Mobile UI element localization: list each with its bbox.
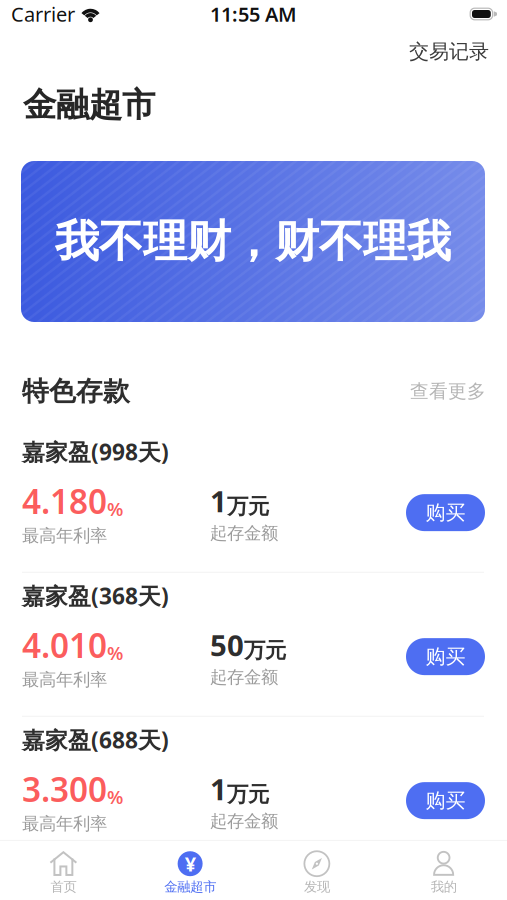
staticText: 最高年利率 bbox=[22, 813, 107, 834]
staticText: 购买 bbox=[425, 644, 465, 669]
staticText: ¥ bbox=[185, 850, 196, 877]
staticText: 起存金额 bbox=[210, 810, 278, 832]
button[interactable]: 购买 bbox=[406, 494, 485, 531]
staticText: 嘉家盈(368天) bbox=[22, 581, 169, 611]
staticText: 查看更多 bbox=[410, 380, 486, 403]
staticText: 金融超市 bbox=[164, 879, 216, 895]
staticText: Carrier bbox=[11, 1, 75, 27]
staticText: 50 bbox=[210, 625, 244, 664]
button[interactable]: 交易记录 bbox=[404, 33, 494, 70]
staticText: 最高年利率 bbox=[22, 669, 107, 690]
staticText: 1 bbox=[210, 481, 227, 520]
staticText: 嘉家盈(688天) bbox=[22, 725, 169, 755]
staticText: 万元 bbox=[227, 781, 269, 807]
staticText: 起存金额 bbox=[210, 666, 278, 688]
staticText: 金融超市 bbox=[23, 84, 155, 125]
button[interactable]: 我的 bbox=[380, 851, 507, 895]
staticText: 万元 bbox=[227, 493, 269, 519]
staticText: 万元 bbox=[244, 637, 286, 663]
staticText: 我不理财，财不理我 bbox=[55, 214, 451, 268]
staticText: 11:55 AM bbox=[210, 1, 297, 27]
staticText: 购买 bbox=[425, 788, 465, 813]
button[interactable]: 发现 bbox=[253, 851, 380, 895]
button[interactable]: 购买 bbox=[406, 782, 485, 819]
staticText: % bbox=[107, 640, 123, 665]
staticText: 嘉家盈(998天) bbox=[22, 437, 169, 467]
staticText: 最高年利率 bbox=[22, 525, 107, 546]
staticText: 4.180 bbox=[22, 479, 107, 523]
staticText: 1 bbox=[210, 769, 227, 808]
staticText: 特色存款 bbox=[22, 375, 130, 408]
staticText: % bbox=[107, 784, 123, 809]
staticText: % bbox=[107, 496, 123, 521]
button[interactable]: ¥ bbox=[127, 851, 254, 895]
staticText: 交易记录 bbox=[409, 39, 489, 64]
staticText: 4.010 bbox=[22, 623, 107, 667]
staticText: 起存金额 bbox=[210, 522, 278, 544]
button[interactable]: 查看更多 bbox=[410, 380, 486, 403]
staticText: 购买 bbox=[425, 500, 465, 525]
button[interactable]: 首页 bbox=[0, 851, 127, 895]
staticText: 发现 bbox=[304, 879, 330, 895]
button[interactable]: 我不理财，财不理我 bbox=[0, 135, 507, 322]
staticText: 我的 bbox=[431, 879, 457, 895]
staticText: 首页 bbox=[50, 879, 76, 895]
staticText: 3.300 bbox=[22, 767, 107, 811]
button[interactable]: 购买 bbox=[406, 638, 485, 675]
